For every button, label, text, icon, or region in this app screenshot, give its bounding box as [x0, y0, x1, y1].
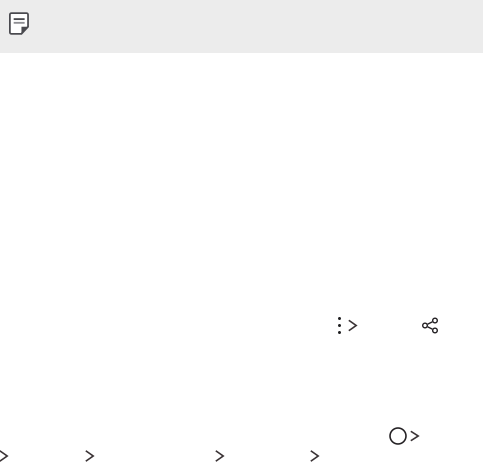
button[interactable]: More — [338, 314, 357, 337]
button[interactable]: Account — [390, 428, 419, 444]
button[interactable]: Search — [85, 450, 94, 462]
button[interactable]: Library — [215, 450, 224, 462]
button[interactable]: Share — [422, 314, 438, 336]
button[interactable]: Notes — [0, 6, 37, 47]
button[interactable]: Settings — [310, 450, 319, 462]
button[interactable]: Home — [0, 450, 8, 462]
